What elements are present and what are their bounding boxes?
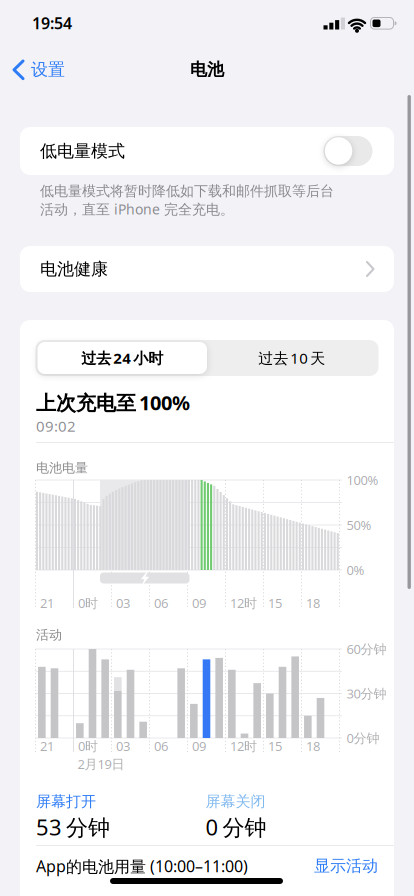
button[interactable]: 显示活动 — [298, 857, 378, 875]
staticText: 15 — [268, 737, 282, 755]
staticText: 53 分钟 — [36, 812, 110, 842]
staticText: 18 — [306, 737, 320, 755]
staticText: 50% — [346, 516, 371, 534]
staticText: 21 — [40, 737, 54, 755]
staticText: 0时 — [78, 594, 98, 612]
staticText: 03 — [116, 594, 130, 612]
staticText: 06 — [154, 737, 168, 755]
staticText: 电池 — [190, 59, 224, 80]
staticText: 2月19日 — [77, 755, 124, 773]
staticText: 09 — [192, 737, 206, 755]
staticText: 60分钟 — [346, 640, 386, 658]
staticText: 低电量模式将暂时降低如下载和邮件抓取等后台 — [40, 182, 334, 200]
staticText: 显示活动 — [314, 856, 378, 876]
staticText: 上次充电至 100% — [36, 389, 190, 416]
staticText: 12时 — [230, 737, 257, 755]
staticText: 0分钟 — [346, 729, 379, 747]
staticText: 电池健康 — [40, 258, 108, 280]
staticText: 活动，直至 iPhone 完全充电。 — [40, 199, 234, 219]
button[interactable]: 设置 — [0, 0, 80, 96]
staticText: 12时 — [230, 594, 257, 612]
staticText: 过去 10 天 — [258, 348, 325, 368]
button[interactable]: 电池健康 — [20, 246, 394, 292]
button[interactable]: 过去 10 天 — [207, 342, 376, 374]
staticText: 09:02 — [36, 416, 76, 436]
staticText: 屏幕打开 — [36, 792, 96, 811]
staticText: App的电池用量 (10:00–11:00) — [36, 855, 248, 877]
staticText: 06 — [154, 594, 168, 612]
button[interactable]: 过去 24 小时 — [37, 342, 207, 374]
staticText: 30分钟 — [346, 685, 386, 702]
button[interactable]: 低电量模式 — [323, 136, 372, 166]
staticText: 低电量模式 — [40, 140, 125, 162]
staticText: 0 分钟 — [205, 812, 266, 842]
staticText: 0时 — [78, 737, 98, 755]
staticText: 屏幕关闭 — [205, 792, 265, 811]
staticText: 15 — [268, 594, 282, 612]
staticText: 21 — [40, 594, 54, 612]
staticText: 设置 — [31, 59, 65, 80]
staticText: 0% — [346, 561, 364, 579]
staticText: 活动 — [36, 627, 62, 643]
staticText: 18 — [306, 594, 320, 612]
staticText: 09 — [192, 594, 206, 612]
staticText: 100% — [346, 471, 378, 489]
staticText: 19:54 — [32, 12, 72, 34]
staticText: 电池电量 — [36, 460, 88, 476]
staticText: 03 — [116, 737, 130, 755]
staticText: 过去 24 小时 — [81, 348, 163, 368]
